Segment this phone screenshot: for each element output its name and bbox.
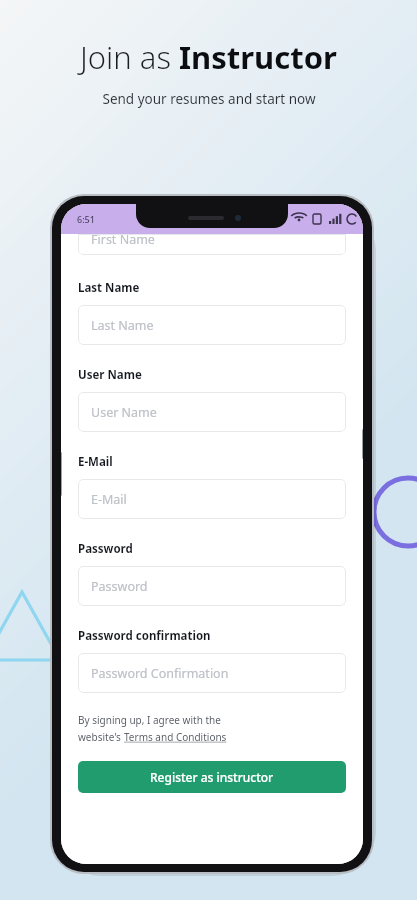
- staticText: Instructor: [179, 36, 337, 78]
- button[interactable]: First Name: [78, 234, 346, 255]
- staticText: User Name: [78, 367, 142, 383]
- button[interactable]: Password: [78, 566, 346, 606]
- staticText: Register as instructor: [150, 769, 274, 785]
- button[interactable]: Last Name: [78, 305, 346, 345]
- staticText: 6:51: [77, 213, 95, 225]
- staticText: Last Name: [78, 280, 140, 296]
- staticText: Password: [91, 578, 148, 595]
- staticText: website's: [78, 730, 124, 744]
- staticText: Send your resumes and start now: [102, 90, 316, 108]
- staticText: E-Mail: [78, 454, 113, 470]
- staticText: User Name: [91, 404, 157, 421]
- button[interactable]: E-Mail: [78, 479, 346, 519]
- staticText: Last Name: [91, 317, 154, 334]
- staticText: Password Confirmation: [91, 665, 229, 682]
- button[interactable]: Password Confirmation: [78, 653, 346, 693]
- staticText: Password confirmation: [78, 628, 211, 644]
- staticText: Join as: [80, 36, 179, 78]
- staticText: First Name: [91, 234, 155, 248]
- button[interactable]: Register as instructor: [78, 761, 346, 793]
- button[interactable]: Terms and Conditions: [124, 730, 227, 744]
- staticText: By signing up, I agree with the: [78, 713, 221, 727]
- staticText: E-Mail: [91, 491, 127, 508]
- button[interactable]: User Name: [78, 392, 346, 432]
- staticText: Password: [78, 541, 133, 557]
